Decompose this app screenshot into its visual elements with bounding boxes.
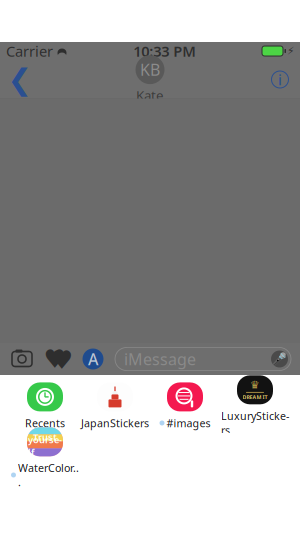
- button[interactable]: Back: [0, 59, 40, 99]
- staticText: Kate: [136, 86, 164, 104]
- staticText: ♛: [250, 379, 260, 391]
- button[interactable]: #images: [150, 381, 220, 431]
- staticText: JapanStickers: [81, 416, 149, 430]
- button[interactable]: Message field: [115, 347, 291, 370]
- staticText: yourself: [28, 433, 62, 458]
- staticText: LuxuryStickers: [221, 409, 289, 437]
- button[interactable]: Details: [260, 59, 300, 99]
- staticText: ♥: [50, 346, 73, 374]
- staticText: A: [88, 348, 98, 370]
- button[interactable]: App Store: [81, 347, 105, 371]
- staticText: Trust: [33, 431, 57, 443]
- staticText: 10:33 PM: [133, 41, 196, 61]
- button[interactable]: Camera: [9, 347, 35, 371]
- button[interactable]: ♛: [220, 381, 290, 431]
- staticText: KB: [140, 59, 160, 80]
- staticText: #images: [166, 416, 210, 430]
- staticText: WaterColor...: [18, 461, 79, 489]
- button[interactable]: Recents: [10, 381, 80, 431]
- button[interactable]: JapanStickers: [80, 381, 150, 431]
- staticText: iMessage: [124, 348, 196, 370]
- staticText: ⚡︎: [287, 45, 294, 57]
- staticText: Recents: [25, 416, 65, 430]
- staticText: ♥: [43, 345, 66, 373]
- button[interactable]: Digital Touch: [45, 347, 71, 371]
- staticText: 🎤: [272, 352, 287, 366]
- staticText: DREAM IT: [242, 394, 267, 401]
- staticText: ❮: [7, 63, 32, 96]
- staticText: Carrier: [6, 41, 53, 61]
- staticText: i: [278, 70, 282, 89]
- button[interactable]: Trust: [10, 433, 80, 483]
